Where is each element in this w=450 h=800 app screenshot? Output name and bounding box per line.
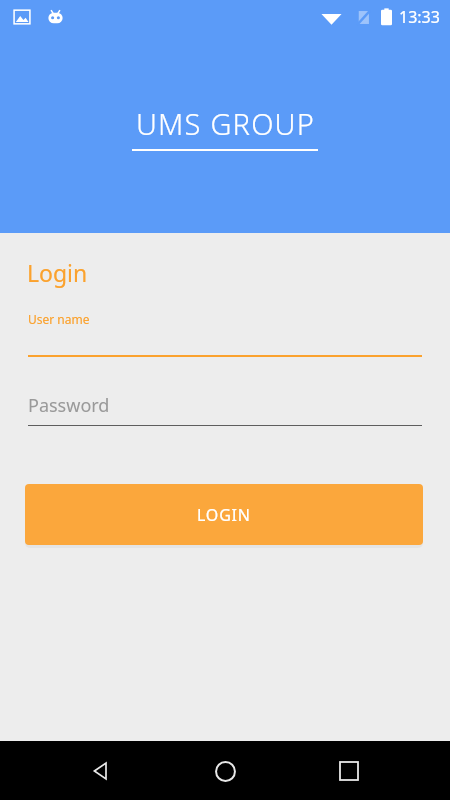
staticText: Password bbox=[28, 393, 110, 418]
staticText: Login bbox=[27, 257, 88, 288]
staticText: LOGIN bbox=[197, 504, 251, 526]
staticText: 13:33 bbox=[399, 6, 440, 28]
button[interactable]: User name bbox=[0, 311, 450, 357]
button[interactable]: Recent apps bbox=[325, 747, 373, 795]
button[interactable]: Back bbox=[76, 747, 124, 795]
button[interactable]: Password bbox=[0, 393, 450, 426]
staticText: User name bbox=[28, 311, 90, 327]
staticText: UMS GROUP bbox=[136, 104, 315, 143]
button[interactable]: LOGIN bbox=[25, 484, 423, 545]
button[interactable]: Home bbox=[201, 747, 249, 795]
